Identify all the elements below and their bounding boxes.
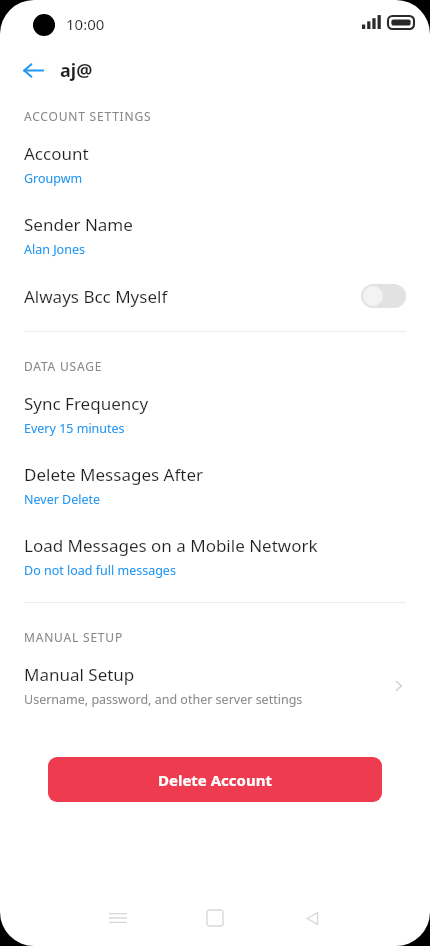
button[interactable]: Account: [0, 142, 430, 187]
button[interactable]: Delete Messages After: [0, 463, 430, 508]
staticText: DATA USAGE: [24, 358, 103, 374]
staticText: Sync Frequency: [24, 392, 149, 415]
button[interactable]: Load Messages on a Mobile Network: [0, 534, 430, 579]
staticText: Sender Name: [24, 213, 133, 236]
staticText: Load Messages on a Mobile Network: [24, 534, 318, 557]
button[interactable]: Recents: [98, 898, 138, 938]
button[interactable]: Manual Setup: [0, 663, 430, 708]
staticText: Groupwm: [24, 170, 83, 187]
staticText: aj@: [60, 58, 93, 83]
staticText: Account: [24, 142, 89, 165]
button[interactable]: Back: [14, 51, 52, 89]
staticText: ACCOUNT SETTINGS: [24, 108, 152, 124]
button[interactable]: Sender Name: [0, 213, 430, 258]
button[interactable]: Delete Account: [48, 757, 382, 802]
staticText: MANUAL SETUP: [24, 629, 123, 645]
staticText: Delete Account: [158, 770, 272, 790]
staticText: Do not load full messages: [24, 562, 176, 579]
button[interactable]: Home: [195, 898, 235, 938]
staticText: Always Bcc Myself: [24, 285, 361, 308]
staticText: Alan Jones: [24, 241, 85, 258]
staticText: Delete Messages After: [24, 463, 204, 486]
staticText: Never Delete: [24, 491, 101, 508]
button[interactable]: Back: [292, 898, 332, 938]
button[interactable]: Sync Frequency: [0, 392, 430, 437]
button[interactable]: Always Bcc Myself: [0, 284, 430, 308]
staticText: Manual Setup: [24, 663, 135, 686]
staticText: 10:00: [66, 14, 105, 34]
staticText: Every 15 minutes: [24, 420, 125, 437]
staticText: Username, password, and other server set…: [24, 691, 303, 708]
